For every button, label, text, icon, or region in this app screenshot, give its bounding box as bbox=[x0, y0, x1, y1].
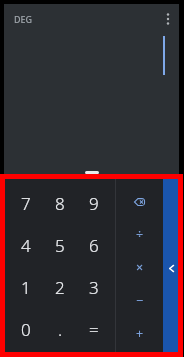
button[interactable]: − bbox=[116, 284, 163, 317]
button[interactable]: Backspace bbox=[116, 185, 163, 218]
button[interactable]: ÷ bbox=[116, 218, 163, 251]
staticText: 1 bbox=[21, 276, 31, 299]
button[interactable]: 8 bbox=[43, 182, 77, 224]
button[interactable]: 7 bbox=[9, 182, 43, 224]
button[interactable]: DEG bbox=[14, 13, 33, 25]
staticText: 3 bbox=[89, 276, 99, 299]
button[interactable]: 1 bbox=[9, 266, 43, 308]
button[interactable]: . bbox=[43, 308, 77, 350]
staticText: . bbox=[58, 318, 63, 341]
staticText: + bbox=[136, 325, 144, 342]
button[interactable]: 6 bbox=[77, 224, 111, 266]
staticText: = bbox=[89, 318, 99, 341]
staticText: − bbox=[136, 292, 144, 309]
staticText: 4 bbox=[21, 234, 31, 257]
staticText: 7 bbox=[21, 192, 31, 215]
staticText: 5 bbox=[55, 234, 65, 257]
button[interactable]: + bbox=[116, 317, 163, 350]
button[interactable]: 4 bbox=[9, 224, 43, 266]
button[interactable]: 5 bbox=[43, 224, 77, 266]
staticText: 0 bbox=[21, 318, 31, 341]
staticText: ÷ bbox=[136, 226, 144, 243]
staticText: 9 bbox=[89, 192, 99, 215]
staticText: 2 bbox=[55, 276, 65, 299]
button[interactable]: 3 bbox=[77, 266, 111, 308]
button[interactable]: 0 bbox=[9, 308, 43, 350]
button[interactable]: × bbox=[116, 251, 163, 284]
staticText: 6 bbox=[89, 234, 99, 257]
staticText: 8 bbox=[55, 192, 65, 215]
staticText: × bbox=[136, 259, 144, 276]
button[interactable]: 9 bbox=[77, 182, 111, 224]
button[interactable]: Open scientific keypad bbox=[163, 179, 178, 352]
button[interactable]: 2 bbox=[43, 266, 77, 308]
button[interactable]: More options bbox=[158, 9, 178, 29]
button[interactable]: = bbox=[77, 308, 111, 350]
